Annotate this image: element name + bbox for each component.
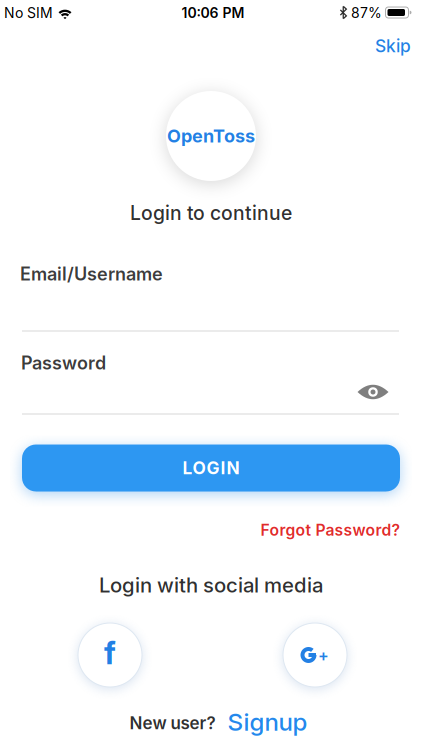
staticText: Login with social media [99,573,323,597]
staticText: New user? [129,713,215,733]
staticText: Password [21,352,106,374]
staticText: Email/Username [20,263,163,285]
button[interactable]: f [78,623,142,687]
staticText: OpenToss [167,125,255,147]
staticText: + [318,646,329,665]
staticText: f [104,634,116,671]
button[interactable]: LOGIN [22,444,400,491]
staticText: Skip [375,35,411,56]
button[interactable]: + [283,623,347,687]
staticText: 87% [351,4,382,21]
staticText: 10:06 PM [181,4,244,21]
button[interactable]: Forgot Password? [260,520,400,539]
button[interactable]: Skip [375,35,411,56]
staticText: No SIM [4,4,53,21]
staticText: Forgot Password? [260,520,400,539]
button[interactable] [357,383,388,400]
staticText: LOGIN [182,457,239,478]
staticText: Login to continue [130,201,292,225]
button[interactable]: Signup [227,707,307,737]
staticText: Signup [227,707,307,737]
